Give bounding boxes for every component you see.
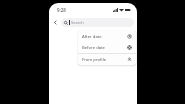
staticText: Search	[71, 20, 84, 25]
button[interactable]: Back	[51, 18, 60, 27]
button[interactable]: Before date	[78, 42, 136, 53]
button[interactable]: From profile	[78, 54, 136, 65]
staticText: Before date	[82, 45, 127, 51]
button[interactable]: After date	[78, 31, 136, 42]
staticText: 9:28	[57, 7, 66, 13]
button[interactable]: Search	[61, 18, 134, 27]
staticText: From profile	[82, 57, 127, 63]
staticText: After date	[82, 34, 127, 40]
